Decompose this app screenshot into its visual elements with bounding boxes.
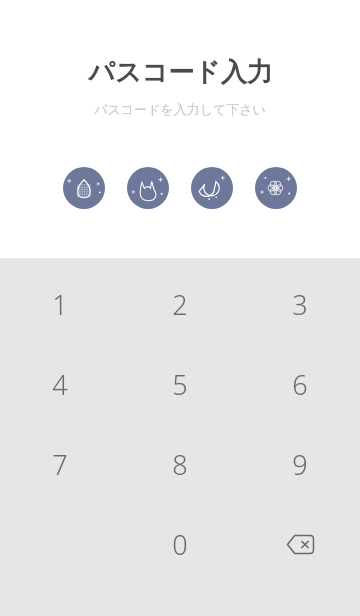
staticText: 0 [172, 526, 188, 563]
staticText: 1 [52, 286, 68, 323]
button[interactable]: 8 [120, 424, 240, 504]
button[interactable]: 0 [120, 504, 240, 584]
button[interactable]: 2 [120, 264, 240, 344]
button[interactable]: 3 [240, 264, 360, 344]
button[interactable]: Delete [240, 504, 360, 584]
button[interactable]: Passcode indicator 3 [191, 167, 233, 209]
button[interactable]: 4 [0, 344, 120, 424]
staticText: 9 [292, 446, 308, 483]
button[interactable]: Passcode indicator 4 [255, 167, 297, 209]
staticText: パスコードを入力して下さい [94, 101, 266, 117]
button[interactable]: 1 [0, 264, 120, 344]
button[interactable]: 6 [240, 344, 360, 424]
staticText: 3 [292, 286, 308, 323]
staticText: 2 [172, 286, 188, 323]
staticText: 8 [172, 446, 188, 483]
button[interactable]: 9 [240, 424, 360, 504]
staticText: 5 [172, 366, 188, 403]
button[interactable]: Passcode indicator 2 [127, 167, 169, 209]
staticText: 4 [52, 366, 68, 403]
staticText: 6 [292, 366, 308, 403]
staticText: 7 [52, 446, 68, 483]
button[interactable]: 7 [0, 424, 120, 504]
staticText: パスコード入力 [88, 56, 273, 89]
button[interactable]: Passcode indicator 1 [63, 167, 105, 209]
button[interactable]: 5 [120, 344, 240, 424]
